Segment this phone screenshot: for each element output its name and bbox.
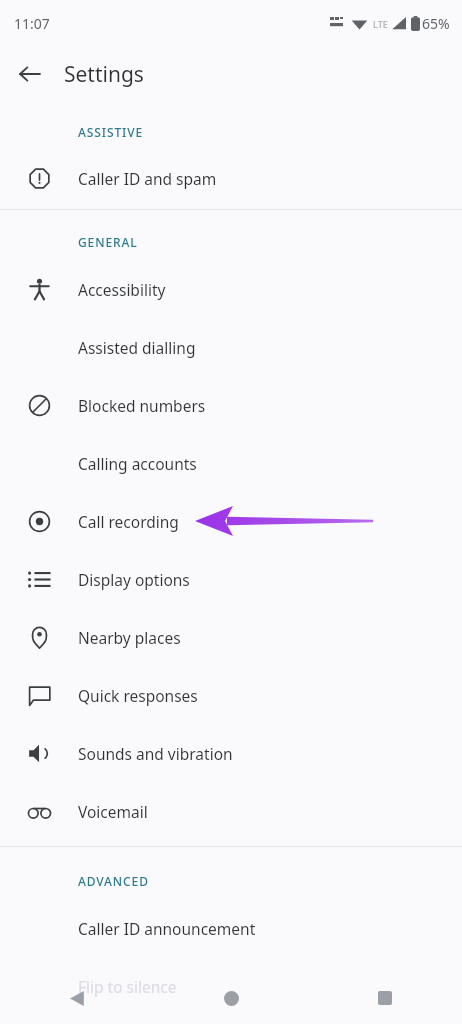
button[interactable]: Accessibility — [0, 260, 462, 318]
button[interactable]: Back — [55, 976, 99, 1020]
staticText: Flip to silence — [78, 976, 177, 997]
staticText: Assisted dialling — [78, 337, 196, 358]
button[interactable]: Flip to silence — [0, 957, 462, 1015]
button[interactable]: Back — [8, 52, 52, 96]
staticText: Quick responses — [78, 685, 198, 706]
staticText: Call recording — [78, 511, 179, 532]
staticText: ADVANCED — [78, 873, 149, 889]
staticText: 11:07 — [14, 14, 50, 33]
staticText: GENERAL — [78, 234, 138, 250]
staticText: LTE — [373, 18, 388, 30]
button[interactable]: Nearby places — [0, 608, 462, 666]
button[interactable]: Home — [209, 976, 253, 1020]
button[interactable]: Assisted dialling — [0, 318, 462, 376]
staticText: Display options — [78, 569, 190, 590]
button[interactable]: Sounds and vibration — [0, 724, 462, 782]
staticText: Voicemail — [78, 801, 148, 822]
staticText: 65% — [422, 14, 450, 33]
staticText: Settings — [64, 60, 144, 89]
staticText: Blocked numbers — [78, 395, 206, 416]
button[interactable]: Recents — [363, 976, 407, 1020]
staticText: Accessibility — [78, 279, 166, 300]
button[interactable]: Call recording — [0, 492, 462, 550]
staticText: Calling accounts — [78, 453, 197, 474]
button[interactable]: Caller ID and spam — [0, 150, 462, 206]
staticText: Nearby places — [78, 627, 181, 648]
button[interactable]: Calling accounts — [0, 434, 462, 492]
staticText: Caller ID and spam — [78, 168, 217, 189]
staticText: Caller ID announcement — [78, 918, 256, 939]
button[interactable]: Display options — [0, 550, 462, 608]
staticText: Sounds and vibration — [78, 743, 233, 764]
button[interactable]: Blocked numbers — [0, 376, 462, 434]
staticText: ASSISTIVE — [78, 124, 144, 140]
button[interactable]: Caller ID announcement — [0, 899, 462, 957]
button[interactable]: Voicemail — [0, 782, 462, 840]
button[interactable]: Quick responses — [0, 666, 462, 724]
